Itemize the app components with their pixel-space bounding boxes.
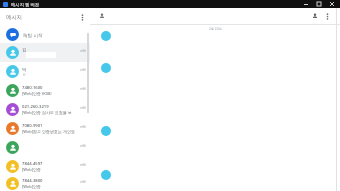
staticText: [Web]참고 인증번호는 개인정보.: [22, 129, 78, 134]
staticText: 어제: [80, 68, 86, 72]
staticText: 어제: [80, 106, 86, 110]
staticText: 어제: [80, 87, 86, 91]
staticText: 어제: [80, 144, 86, 148]
button[interactable]: Close: [325, 0, 338, 8]
button[interactable]: Contact details: [310, 11, 320, 21]
staticText: ㅇ: [22, 72, 26, 77]
staticText: 어제: [80, 49, 86, 53]
staticText: [Web]인증: [22, 167, 41, 172]
staticText: 박: [22, 67, 27, 72]
staticText: 김: [22, 47, 27, 52]
staticText: 메시지 웹 버전: [11, 1, 40, 7]
button[interactable]: 7844-3800: [0, 176, 90, 191]
button[interactable]: Maximize: [312, 0, 325, 8]
button[interactable]: 채팅 시작: [0, 26, 90, 43]
button[interactable]: 어제: [0, 138, 90, 157]
button[interactable]: 박: [0, 62, 90, 81]
staticText: [Web]인증 (K08): [22, 91, 52, 96]
staticText: 어제: [80, 163, 86, 167]
staticText: 메시지: [6, 14, 23, 21]
button[interactable]: 김: [0, 43, 90, 62]
button[interactable]: Contact: [97, 11, 107, 21]
staticText: 어제: [80, 125, 86, 129]
staticText: 2월 22일: [209, 27, 222, 31]
staticText: 7480-1600: [22, 85, 43, 91]
staticText: 7844-4597: [22, 161, 43, 167]
button[interactable]: 7844-4597: [0, 157, 90, 176]
button[interactable]: Minimize: [299, 0, 312, 8]
staticText: 채팅 시작: [23, 32, 43, 38]
staticText: 7844-3800: [22, 178, 43, 184]
button[interactable]: 7480-1600: [0, 81, 90, 100]
staticText: [Web]인증 검사도 요청을 보내…: [22, 110, 78, 115]
staticText: 어제: [80, 180, 86, 184]
staticText: [Web]인증: [22, 184, 41, 189]
button[interactable]: More options: [322, 11, 332, 21]
button[interactable]: 021-260-3219: [0, 100, 90, 119]
button[interactable]: More options: [77, 12, 87, 22]
staticText: 021-260-3219: [22, 104, 49, 110]
staticText: 7080-9901: [22, 123, 43, 129]
button[interactable]: 7080-9901: [0, 119, 90, 138]
